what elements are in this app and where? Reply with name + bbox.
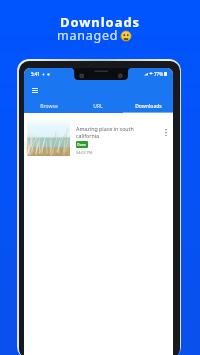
- staticText: Downloads: [135, 103, 162, 110]
- staticText: Downloads: [0, 13, 200, 31]
- button[interactable]: Open navigation menu: [29, 84, 41, 96]
- button[interactable]: Downloads: [123, 99, 173, 113]
- staticText: Done: [77, 142, 87, 147]
- staticText: 5:41: [31, 71, 40, 77]
- staticText: 04:03 PM: [76, 150, 93, 155]
- staticText: URL: [93, 103, 103, 110]
- staticText: managed: [57, 27, 119, 44]
- button[interactable]: More options: [160, 126, 172, 138]
- staticText: 77%: [154, 71, 163, 77]
- staticText: Browse: [40, 103, 58, 110]
- button[interactable]: URL: [73, 99, 123, 113]
- button[interactable]: Amazing place in south california: [24, 113, 173, 158]
- staticText: Amazing place in south california: [76, 125, 134, 139]
- button[interactable]: Browse: [24, 99, 73, 113]
